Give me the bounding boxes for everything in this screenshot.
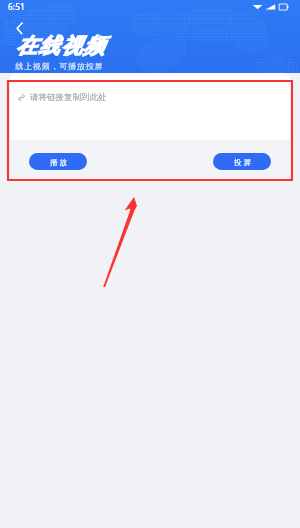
staticText: 请将链接复制到此处 [30,92,107,103]
staticText: 6:51 [8,1,25,13]
button[interactable]: 请将链接复制到此处 [10,73,290,140]
staticText: 线上视频，可播放投屏 [15,61,103,71]
staticText: 在线视频 [15,33,105,59]
button[interactable]: 投 屏 [213,153,271,170]
button[interactable]: Back [11,19,29,37]
button[interactable]: 播 放 [29,153,87,170]
staticText: 投 屏 [234,157,251,167]
staticText: 播 放 [50,157,67,167]
